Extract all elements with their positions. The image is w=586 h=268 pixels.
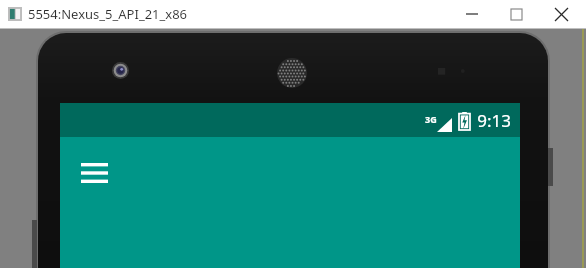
staticText: 5554:Nexus_5_API_21_x86 [28, 5, 188, 23]
button[interactable]: Open navigation drawer [70, 149, 118, 197]
staticText: 3G [425, 113, 437, 125]
button[interactable]: Minimize [450, 0, 494, 28]
button[interactable]: Close [538, 0, 584, 28]
button[interactable]: Maximize [494, 0, 538, 28]
staticText: 9:13 [477, 109, 511, 132]
